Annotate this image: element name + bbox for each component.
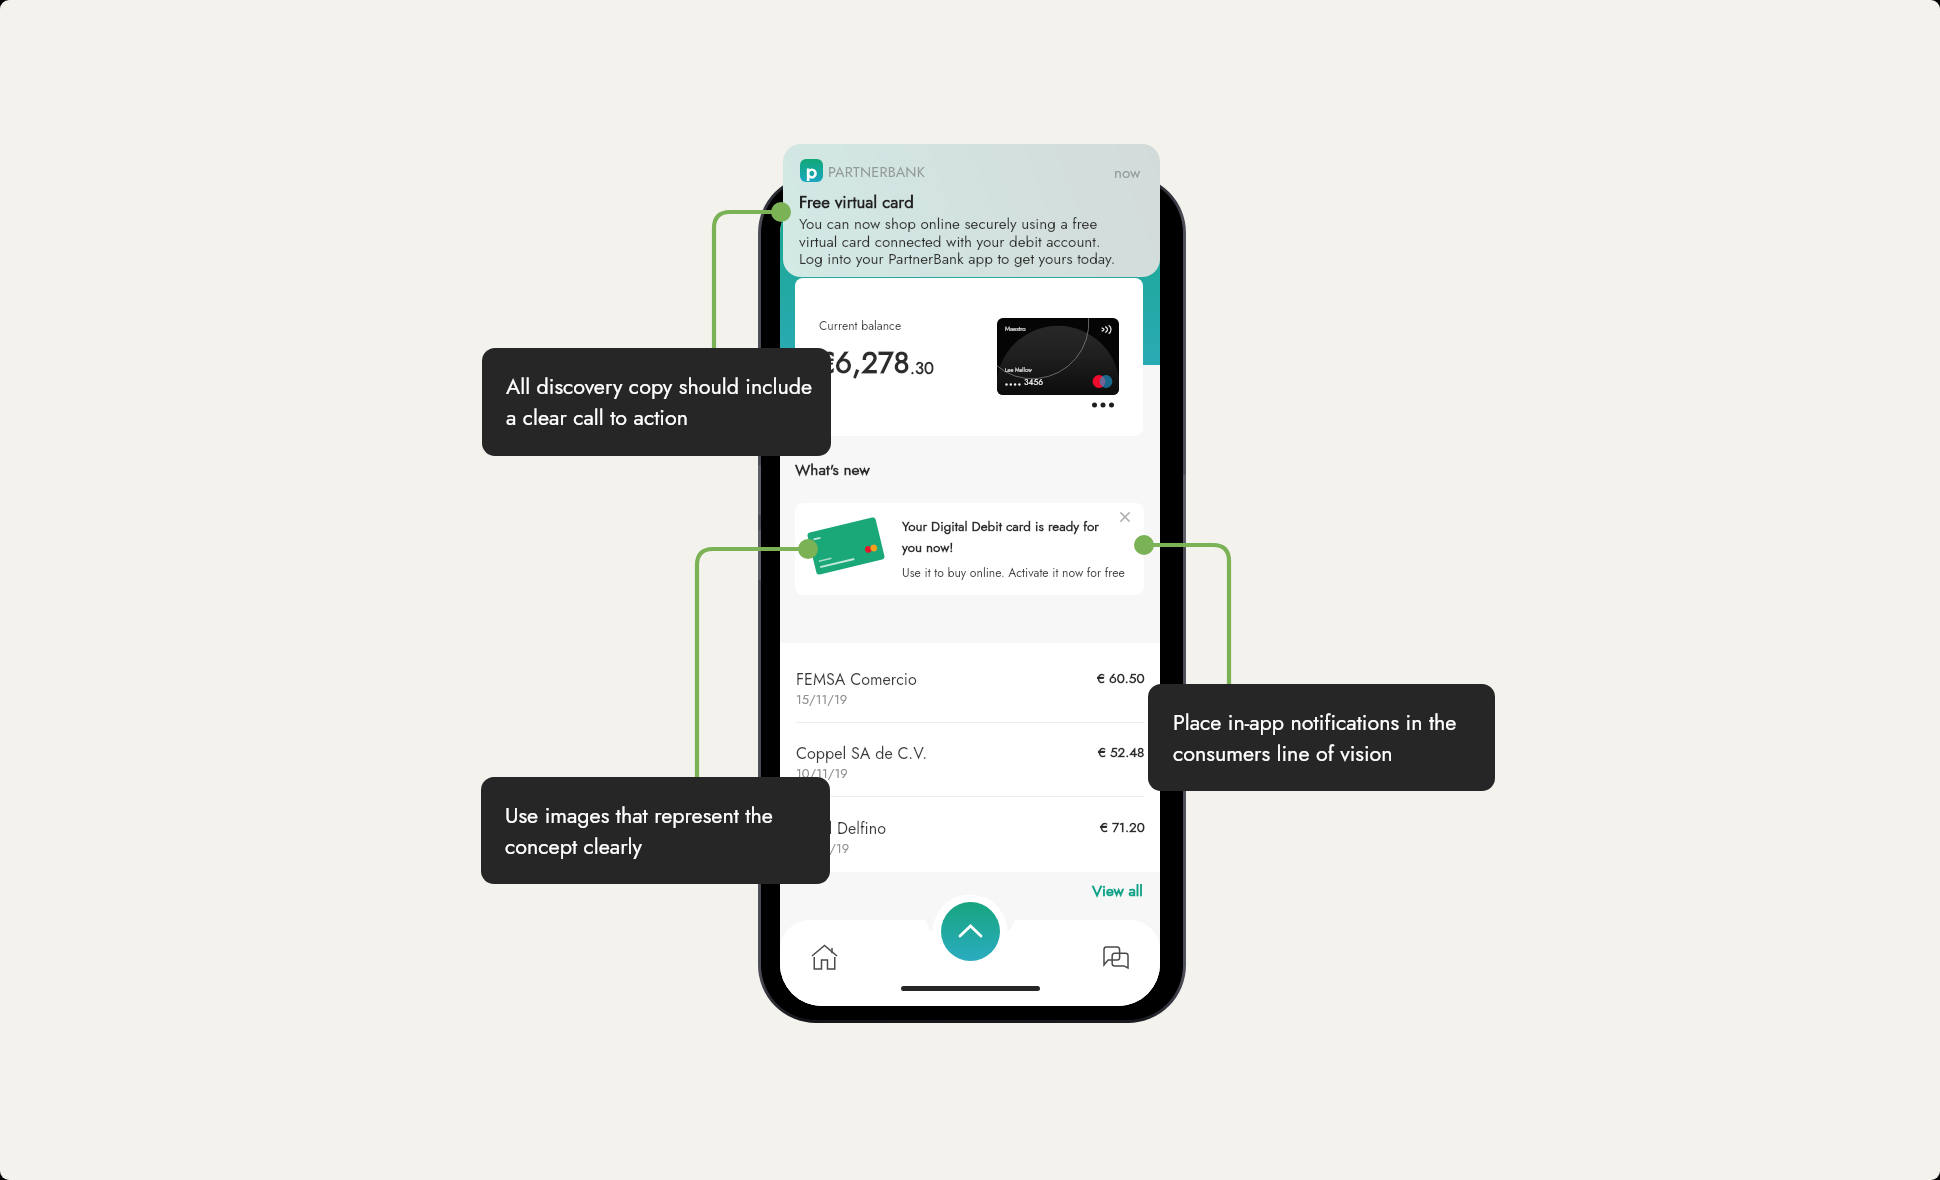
button[interactable]: Dismiss (1115, 507, 1135, 527)
staticText: € 60.50 (1097, 669, 1145, 689)
staticText: Hotel Delfino (796, 817, 886, 840)
button[interactable]: View all (1092, 880, 1143, 902)
staticText: Use images that represent the (505, 800, 773, 831)
staticText: FEMSA Comercio (796, 668, 917, 691)
staticText: 05/11/19 (796, 839, 850, 858)
button[interactable]: Use images that represent the (481, 777, 830, 884)
staticText: p (806, 159, 817, 181)
staticText: € 52.48 (1098, 743, 1145, 763)
staticText: € 71.20 (1100, 818, 1145, 838)
button[interactable]: Messages (1104, 947, 1128, 968)
staticText: Your Digital Debit card is ready for you… (902, 517, 1121, 557)
staticText: You can now shop online securely using a… (799, 213, 1116, 269)
staticText: Place in-app notifications in the (1173, 707, 1457, 738)
staticText: Use it to buy online. Activate it now fo… (902, 564, 1142, 582)
button[interactable]: p (783, 144, 1160, 277)
staticText: .30 (910, 356, 934, 380)
button[interactable]: Send money (941, 902, 1000, 961)
staticText: What's new (795, 458, 870, 480)
staticText: Current balance (819, 317, 902, 335)
button[interactable]: Coppel SA de C.V. (780, 723, 1160, 796)
staticText: consumers line of vision (1173, 738, 1393, 769)
staticText: 3456 (1024, 376, 1044, 388)
button[interactable]: Hotel Delfino (780, 797, 1160, 871)
staticText: a clear call to action (506, 402, 688, 433)
button[interactable]: Current balance (795, 278, 1143, 436)
staticText: now (1114, 162, 1141, 184)
staticText: View all (1092, 880, 1143, 902)
staticText: €6,278 (818, 341, 910, 384)
staticText: PARTNERBANK (828, 162, 926, 183)
staticText: Maestro (1005, 324, 1026, 333)
staticText: Coppel SA de C.V. (796, 742, 927, 765)
button[interactable]: Your Digital Debit card is ready for you… (795, 503, 1144, 595)
button[interactable]: Place in-app notifications in the (1148, 684, 1495, 791)
staticText: Free virtual card (799, 190, 914, 214)
staticText: Lee Mellow (1005, 366, 1032, 374)
staticText: concept clearly (505, 831, 642, 862)
staticText: All discovery copy should include (506, 371, 813, 402)
button[interactable]: Home (812, 945, 837, 969)
button[interactable]: FEMSA Comercio (780, 643, 1160, 722)
staticText: 10/11/19 (796, 764, 848, 783)
staticText: 15/11/19 (796, 690, 848, 709)
button[interactable]: All discovery copy should include (482, 348, 831, 456)
